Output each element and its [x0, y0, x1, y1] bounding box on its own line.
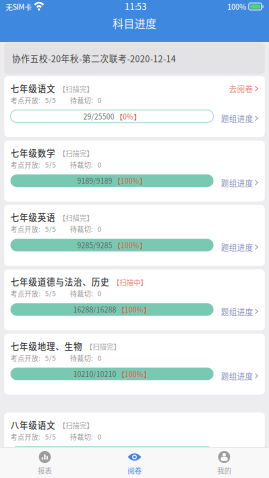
staticText: 0 — [97, 95, 101, 105]
button[interactable]: 题组进度 — [221, 302, 258, 317]
button[interactable]: 报表 — [0, 447, 90, 478]
staticText: 10210/10210 — [73, 369, 116, 379]
staticText: 题组进度 — [221, 113, 253, 124]
staticText: 5/5 — [45, 160, 56, 169]
staticText: 七年级英语 — [10, 211, 55, 224]
staticText: 考点开放: — [10, 160, 40, 169]
staticText: 5/5 — [45, 95, 56, 105]
staticText: 考点开放: — [10, 95, 40, 105]
staticText: 七年级道德与法治、历史 — [10, 276, 109, 288]
staticText: 29/25500 — [83, 111, 114, 121]
button[interactable]: 题组进度 — [221, 445, 258, 460]
staticText: 七年级地理、生物 — [10, 340, 82, 352]
staticText: 题组进度 — [221, 370, 253, 382]
staticText: 【扫描完】 — [85, 341, 120, 351]
staticText: 无SIM卡 — [5, 1, 31, 12]
staticText: 题组进度 — [221, 306, 253, 317]
staticText: 考点开放: — [10, 224, 40, 234]
staticText: 0 — [97, 432, 101, 441]
staticText: 5/5 — [45, 288, 56, 298]
staticText: 【扫描完】 — [58, 83, 93, 94]
button[interactable]: 我的 — [179, 447, 269, 478]
staticText: 我的 — [217, 465, 231, 475]
staticText: 题组进度 — [221, 449, 253, 460]
staticText: 【扫描完】 — [58, 420, 93, 430]
staticText: 去阅卷 — [229, 83, 253, 94]
staticText: 八年级语文 — [10, 419, 55, 431]
staticText: 考点开放: — [10, 288, 40, 298]
button[interactable]: 题组进度 — [221, 366, 258, 382]
staticText: 0 — [97, 224, 101, 234]
staticText: 0 — [97, 160, 101, 169]
staticText: 【100%】 — [114, 240, 147, 250]
staticText: 5/5 — [45, 353, 56, 363]
staticText: 【100%】 — [118, 369, 151, 379]
staticText: 待裁切: — [70, 95, 93, 105]
staticText: 5/5 — [45, 224, 56, 234]
staticText: 待裁切: — [70, 224, 93, 234]
staticText: 【0%】 — [116, 111, 141, 121]
staticText: 9285/9285 — [77, 240, 112, 250]
staticText: 5/5 — [45, 432, 56, 441]
staticText: 考点开放: — [10, 353, 40, 363]
staticText: 阅卷 — [127, 465, 141, 475]
button[interactable]: 阅卷 — [90, 447, 179, 478]
staticText: 题组进度 — [221, 177, 253, 188]
button[interactable]: 题组进度 — [221, 109, 258, 124]
staticText: 11:53 — [125, 0, 147, 12]
button[interactable]: 题组进度 — [221, 173, 258, 188]
staticText: 9189/9189 — [77, 176, 112, 186]
staticText: 100% — [227, 1, 246, 12]
staticText: 报表 — [38, 465, 52, 475]
staticText: 【扫描中】 — [112, 277, 147, 287]
staticText: 【扫描完】 — [58, 212, 93, 222]
staticText: 科目进度 — [112, 15, 156, 31]
staticText: 0 — [97, 288, 101, 298]
staticText: 16288/16288 — [73, 304, 116, 315]
staticText: 0 — [97, 353, 101, 363]
staticText: 【100%】 — [114, 176, 147, 186]
staticText: 待裁切: — [70, 353, 93, 363]
staticText: 考点开放: — [10, 432, 40, 441]
staticText: 待裁切: — [70, 160, 93, 169]
staticText: 题组进度 — [221, 241, 253, 253]
staticText: 【100%】 — [102, 448, 135, 458]
staticText: 七年级数学 — [10, 147, 55, 159]
button[interactable]: 去阅卷 — [229, 82, 258, 95]
staticText: 【扫描完】 — [58, 148, 93, 158]
staticText: 七年级语文 — [10, 82, 55, 95]
staticText: 【100%】 — [118, 304, 151, 315]
staticText: 协作五校-20年秋-第二次联考-2020-12-14 — [12, 52, 176, 65]
staticText: 待裁切: — [70, 432, 93, 441]
staticText: 待裁切: — [70, 288, 93, 298]
button[interactable]: 题组进度 — [221, 237, 258, 253]
